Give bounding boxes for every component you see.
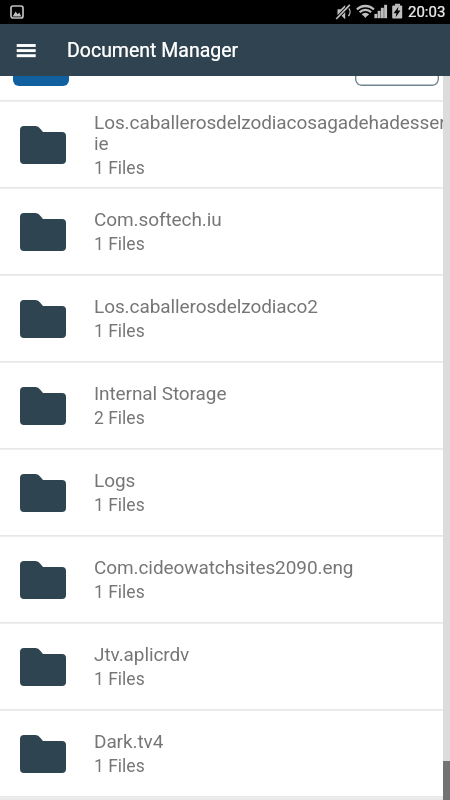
staticText: Los.caballerosdelzodiaco2 [94, 295, 318, 317]
staticText: Document Manager [67, 39, 239, 62]
staticText: 1 Files [94, 669, 145, 690]
staticText: Com.softech.iu [94, 208, 222, 230]
button[interactable]: Los.caballerosdelzodiacosagadehadesserie [0, 102, 450, 187]
staticText: Logs [94, 469, 136, 491]
staticText: Dark.tv4 [94, 730, 164, 752]
staticText: Com.cideowatchsites2090.eng [94, 556, 354, 578]
staticText: 1 Files [94, 234, 145, 255]
button[interactable]: Logs [0, 450, 450, 535]
staticText: Jtv.aplicrdv [94, 643, 190, 665]
button[interactable]: Open navigation menu [11, 35, 41, 65]
button[interactable]: Jtv.aplicrdv [0, 624, 450, 709]
staticText: 1 Files [94, 756, 145, 777]
button[interactable]: Los.caballerosdelzodiaco2 [0, 276, 450, 361]
staticText: 1 Files [94, 495, 145, 516]
button[interactable]: Com.cideowatchsites2090.eng [0, 537, 450, 622]
staticText: 1 Files [94, 582, 145, 603]
button[interactable]: Dark.tv4 [0, 711, 450, 796]
staticText: 1 Files [94, 158, 145, 179]
button[interactable] [13, 62, 69, 86]
staticText: 1 Files [94, 321, 145, 342]
button[interactable]: Com.softech.iu [0, 189, 450, 274]
button[interactable] [355, 62, 439, 86]
staticText: 2 Files [94, 408, 145, 429]
button[interactable]: Internal Storage [0, 363, 450, 448]
staticText: 20:03 [408, 3, 446, 21]
staticText: Los.caballerosdelzodiacosagadehadesserie [94, 111, 450, 154]
staticText: Internal Storage [94, 382, 227, 404]
